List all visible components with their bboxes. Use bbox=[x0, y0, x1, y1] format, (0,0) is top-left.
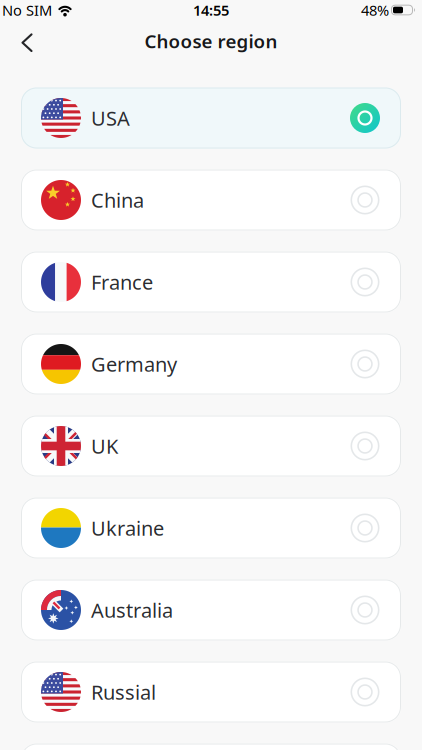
button[interactable]: Kazakhstan bbox=[21, 743, 401, 750]
staticText: Germany bbox=[91, 351, 177, 377]
staticText: France bbox=[91, 269, 153, 295]
staticText: Ukraine bbox=[91, 515, 164, 541]
staticText: 14:55 bbox=[193, 0, 229, 20]
staticText: USA bbox=[91, 105, 130, 131]
button[interactable]: Germany bbox=[21, 333, 401, 394]
staticText: Choose region bbox=[144, 29, 277, 53]
button[interactable]: UK bbox=[21, 415, 401, 476]
staticText: China bbox=[91, 187, 144, 213]
button[interactable]: Australia bbox=[21, 579, 401, 640]
staticText: Australia bbox=[91, 597, 173, 623]
staticText: Russial bbox=[91, 679, 156, 705]
staticText: UK bbox=[91, 433, 118, 459]
button[interactable]: Ukraine bbox=[21, 497, 401, 558]
button[interactable]: China bbox=[21, 169, 401, 230]
staticText: No SIM bbox=[2, 0, 52, 20]
button[interactable]: USA bbox=[21, 87, 401, 148]
button[interactable]: France bbox=[21, 251, 401, 312]
button[interactable]: Russial bbox=[21, 661, 401, 722]
button[interactable]: Back bbox=[0, 31, 33, 50]
staticText: 48% bbox=[361, 0, 389, 20]
